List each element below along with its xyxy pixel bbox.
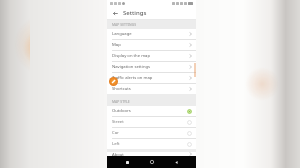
button[interactable]: Navigation settings — [107, 62, 196, 73]
staticText: Outdoors — [112, 108, 187, 114]
button[interactable]: Traffic alerts on map — [107, 73, 196, 84]
button[interactable]: Display on the map — [107, 51, 196, 62]
button[interactable]: About — [107, 152, 196, 156]
staticText: Language — [112, 31, 189, 37]
button[interactable]: Left — [107, 139, 196, 149]
button[interactable]: Shortcuts — [107, 84, 196, 94]
staticText: Map — [112, 42, 189, 48]
button[interactable]: Outdoors — [107, 106, 196, 117]
staticText: Settings — [123, 9, 147, 17]
button[interactable]: Car — [107, 128, 196, 139]
staticText: Navigation settings — [112, 64, 189, 70]
button[interactable]: Recent apps — [172, 158, 180, 166]
staticText: Street — [112, 119, 187, 125]
button[interactable]: Map — [107, 40, 196, 51]
staticText: Left — [112, 141, 187, 147]
button[interactable]: Street — [107, 117, 196, 128]
staticText: MAP STYLE — [112, 99, 130, 104]
staticText: MAP SETTINGS — [112, 22, 137, 27]
button[interactable]: Back — [123, 158, 131, 166]
staticText: Car — [112, 130, 187, 136]
staticText: Traffic alerts on map — [112, 75, 189, 81]
staticText: About — [112, 152, 189, 156]
button[interactable]: Home — [148, 158, 156, 166]
staticText: Display on the map — [112, 53, 189, 59]
staticText: Shortcuts — [112, 86, 189, 92]
button[interactable]: Language — [107, 29, 196, 40]
button[interactable]: Navigate up — [111, 9, 120, 18]
